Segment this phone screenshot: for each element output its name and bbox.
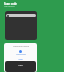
staticText: Scan code xyxy=(4,2,17,6)
button[interactable]: Help xyxy=(4,58,37,61)
button[interactable]: Scan code xyxy=(4,2,17,6)
staticText: Searching xyxy=(16,53,26,56)
staticText: Use camera xyxy=(4,5,15,8)
staticText: Waiting for device xyxy=(13,45,29,48)
button[interactable]: Address bar xyxy=(6,14,36,17)
staticText: Next xyxy=(18,64,23,67)
button[interactable]: Next xyxy=(5,61,36,72)
staticText: Help xyxy=(18,58,23,61)
